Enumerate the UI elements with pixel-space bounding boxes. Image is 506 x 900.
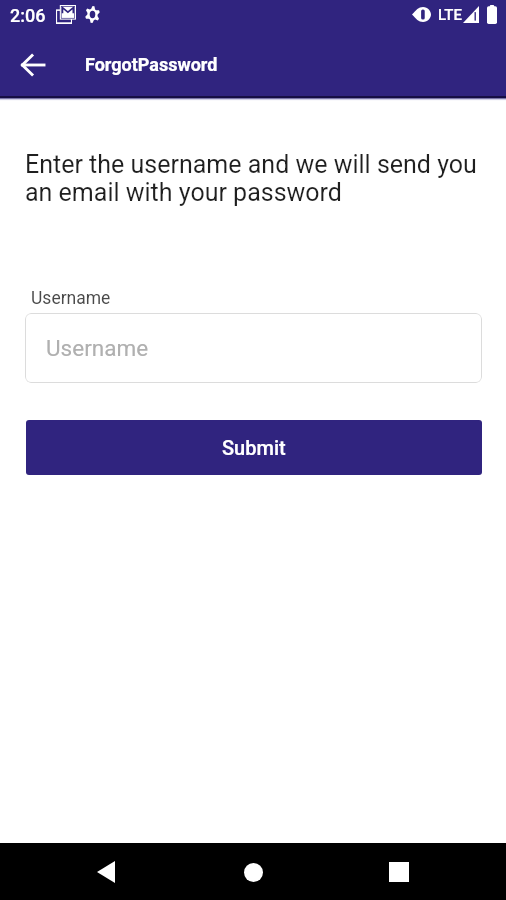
button[interactable]: Submit bbox=[26, 420, 482, 475]
button[interactable]: Back bbox=[78, 844, 134, 900]
staticText: Username bbox=[46, 335, 149, 361]
staticText: Submit bbox=[222, 436, 286, 459]
staticText: 2:06 bbox=[10, 5, 46, 26]
staticText: LTE bbox=[438, 6, 462, 24]
button[interactable]: Recent apps bbox=[371, 844, 427, 900]
staticText: Username bbox=[31, 288, 111, 309]
button[interactable]: Back bbox=[0, 32, 65, 97]
staticText: ForgotPassword bbox=[85, 54, 218, 75]
staticText: Enter the username and we will send you … bbox=[25, 150, 486, 207]
button[interactable]: Username bbox=[25, 313, 482, 383]
button[interactable]: Home bbox=[225, 844, 281, 900]
